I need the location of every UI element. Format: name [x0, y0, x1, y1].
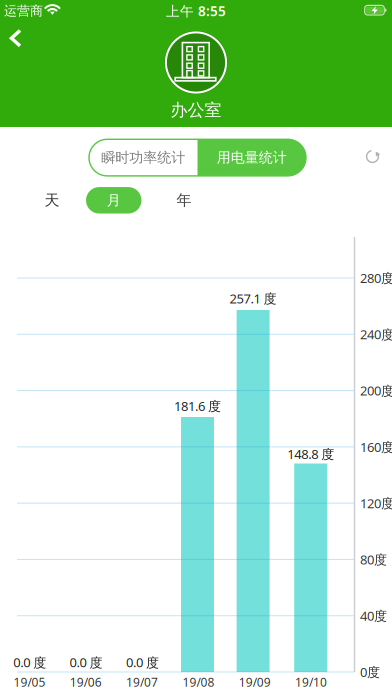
staticText: 上午 8:55 [166, 2, 226, 20]
staticText: 0.0 度 [70, 653, 103, 671]
staticText: 0.0 度 [126, 653, 159, 671]
staticText: 运营商 [4, 3, 43, 19]
staticText: 0.0 度 [13, 653, 46, 671]
staticText: 257.1 度 [230, 290, 277, 307]
staticText: 19/05 [13, 674, 45, 690]
button[interactable]: 刷新 [360, 144, 384, 168]
staticText: 80度 [360, 551, 387, 568]
staticText: 200度 [360, 382, 392, 399]
button[interactable]: 用电量统计 [198, 140, 306, 176]
staticText: 160度 [360, 438, 392, 456]
staticText: 办公室 [170, 99, 221, 121]
staticText: 148.8 度 [287, 445, 334, 463]
staticText: 19/10 [295, 674, 327, 690]
staticText: 19/06 [70, 674, 102, 690]
staticText: 181.6 度 [174, 397, 221, 415]
button[interactable]: 瞬时功率统计 [89, 140, 197, 176]
staticText: 天 [44, 191, 59, 210]
button[interactable]: 年 [164, 186, 204, 214]
button[interactable]: 返回 [0, 0, 36, 36]
staticText: 0度 [360, 663, 380, 681]
staticText: 240度 [360, 325, 392, 343]
staticText: 月 [107, 191, 121, 209]
button[interactable]: 天 [32, 186, 72, 214]
staticText: 19/09 [239, 674, 271, 690]
staticText: 120度 [360, 494, 392, 512]
staticText: 40度 [360, 607, 387, 625]
staticText: 280度 [360, 269, 392, 287]
staticText: 年 [176, 191, 191, 210]
staticText: 19/07 [126, 674, 158, 690]
staticText: 瞬时功率统计 [101, 149, 185, 166]
staticText: 19/08 [182, 674, 214, 690]
staticText: 用电量统计 [217, 149, 287, 166]
button[interactable]: 月 [86, 187, 141, 214]
